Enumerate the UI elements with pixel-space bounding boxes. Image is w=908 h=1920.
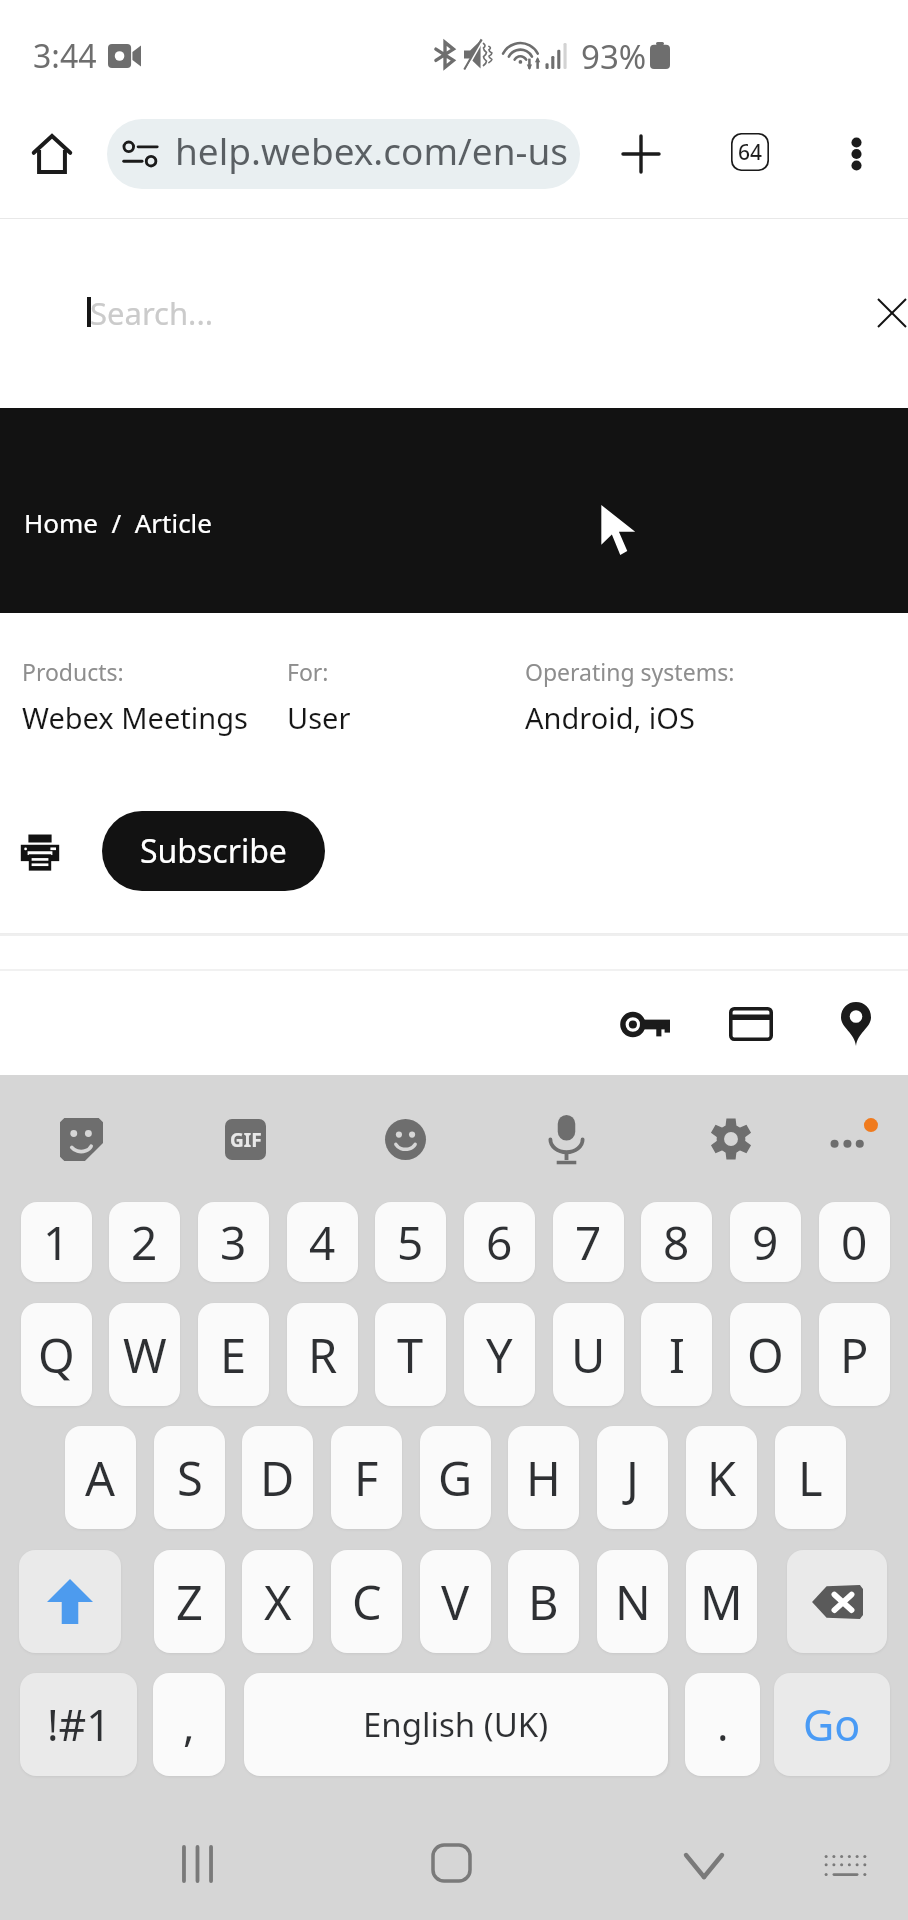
button[interactable]: Shift	[19, 1550, 121, 1653]
button[interactable]: C	[331, 1550, 402, 1653]
button[interactable]: R	[287, 1303, 358, 1406]
staticText: 3:44	[33, 34, 97, 78]
button[interactable]: Hide keyboard	[669, 1849, 739, 1883]
button[interactable]: 0	[819, 1202, 890, 1282]
button[interactable]: S	[154, 1426, 225, 1529]
staticText: ,	[183, 1695, 195, 1754]
staticText: Z	[176, 1570, 203, 1634]
button[interactable]: 3	[198, 1202, 269, 1282]
staticText: Operating systems:	[525, 656, 735, 687]
staticText: K	[707, 1446, 737, 1510]
staticText: 2	[131, 1211, 158, 1274]
staticText: O	[747, 1323, 784, 1387]
staticText: P	[840, 1323, 869, 1387]
button[interactable]: P	[819, 1303, 890, 1406]
staticText: S	[177, 1446, 203, 1510]
button[interactable]: L	[775, 1426, 846, 1529]
staticText: 5	[397, 1211, 424, 1274]
staticText: !#1	[47, 1695, 111, 1754]
button[interactable]: Stickers	[48, 1106, 114, 1172]
button[interactable]: 4	[287, 1202, 358, 1282]
button[interactable]: Home	[415, 1843, 487, 1883]
button[interactable]: help.webex.com/en-us	[107, 119, 580, 189]
staticText: English (UK)	[363, 1702, 549, 1747]
button[interactable]: ,	[153, 1673, 225, 1776]
button[interactable]: I	[641, 1303, 712, 1406]
button[interactable]: Q	[21, 1303, 92, 1406]
staticText: Android, iOS	[525, 698, 695, 737]
button[interactable]: 1	[21, 1202, 92, 1282]
staticText: 8	[663, 1211, 690, 1274]
button[interactable]: 6	[464, 1202, 535, 1282]
staticText: 7	[575, 1211, 602, 1274]
button[interactable]: Settings	[698, 1106, 764, 1172]
button[interactable]: U	[553, 1303, 624, 1406]
button[interactable]: 8	[641, 1202, 712, 1282]
staticText: 93%	[581, 34, 647, 79]
staticText: 0	[841, 1211, 868, 1274]
staticText: Go	[803, 1695, 861, 1754]
button[interactable]: H	[508, 1426, 579, 1529]
button[interactable]: Payment methods	[710, 995, 792, 1053]
button[interactable]: 9	[730, 1202, 801, 1282]
button[interactable]: GIF	[212, 1106, 278, 1172]
button[interactable]: Change keyboard	[810, 1847, 880, 1883]
button[interactable]: J	[597, 1426, 668, 1529]
staticText: 1	[43, 1211, 70, 1274]
button[interactable]: B	[508, 1550, 579, 1653]
button[interactable]: G	[420, 1426, 491, 1529]
button[interactable]: K	[686, 1426, 757, 1529]
staticText: W	[123, 1323, 167, 1387]
button[interactable]: New tab	[606, 119, 676, 189]
button[interactable]: T	[375, 1303, 446, 1406]
staticText: For:	[287, 656, 329, 687]
staticText: E	[220, 1323, 247, 1387]
button[interactable]: More	[815, 1106, 881, 1172]
button[interactable]: Z	[154, 1550, 225, 1653]
button[interactable]: M	[686, 1550, 757, 1653]
button[interactable]: Print	[7, 819, 73, 885]
button[interactable]: A	[65, 1426, 136, 1529]
button[interactable]: Close search	[861, 282, 908, 344]
staticText: X	[264, 1570, 292, 1634]
button[interactable]: 5	[375, 1202, 446, 1282]
button[interactable]: V	[420, 1550, 491, 1653]
button[interactable]: Go	[774, 1673, 890, 1776]
button[interactable]: 7	[553, 1202, 624, 1282]
staticText: 3	[220, 1211, 247, 1274]
button[interactable]: F	[331, 1426, 402, 1529]
staticText: J	[626, 1446, 639, 1510]
button[interactable]: D	[242, 1426, 313, 1529]
staticText: I	[669, 1323, 685, 1387]
button[interactable]: O	[730, 1303, 801, 1406]
staticText: 4	[309, 1211, 336, 1274]
button[interactable]: Emoji	[372, 1106, 438, 1172]
button[interactable]: 2	[109, 1202, 180, 1282]
button[interactable]: Home	[18, 120, 86, 188]
button[interactable]: Passwords	[604, 995, 686, 1053]
button[interactable]: Voice input	[533, 1106, 599, 1172]
button[interactable]: W	[109, 1303, 180, 1406]
button[interactable]: .	[685, 1673, 760, 1776]
staticText: GIF	[230, 1127, 262, 1153]
button[interactable]: Tabs	[715, 117, 785, 187]
button[interactable]: Y	[464, 1303, 535, 1406]
staticText: A	[85, 1446, 116, 1510]
button[interactable]: Subscribe	[102, 811, 325, 891]
button[interactable]: Recent apps	[162, 1845, 232, 1883]
staticText: L	[798, 1446, 823, 1510]
staticText: H	[526, 1446, 561, 1510]
staticText: 6	[486, 1211, 513, 1274]
staticText: U	[571, 1323, 606, 1387]
button[interactable]: N	[597, 1550, 668, 1653]
button[interactable]: !#1	[20, 1673, 137, 1776]
staticText: M	[700, 1570, 743, 1634]
button[interactable]: English (UK)	[244, 1673, 668, 1776]
staticText: 9	[752, 1211, 779, 1274]
button[interactable]: E	[198, 1303, 269, 1406]
staticText: F	[354, 1446, 379, 1510]
button[interactable]: X	[242, 1550, 313, 1653]
button[interactable]: Backspace	[787, 1550, 887, 1653]
button[interactable]: Addresses	[815, 995, 897, 1053]
button[interactable]: More options	[822, 120, 890, 188]
